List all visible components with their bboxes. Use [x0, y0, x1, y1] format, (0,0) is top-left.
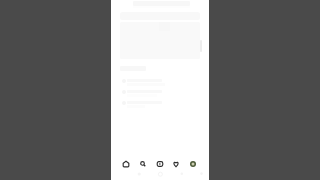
button[interactable]: Activity: [172, 160, 180, 168]
button[interactable]: Reels: [156, 160, 164, 168]
button[interactable]: Search: [139, 160, 147, 168]
button[interactable]: Home: [122, 160, 130, 168]
button[interactable]: Profile: [189, 160, 197, 168]
